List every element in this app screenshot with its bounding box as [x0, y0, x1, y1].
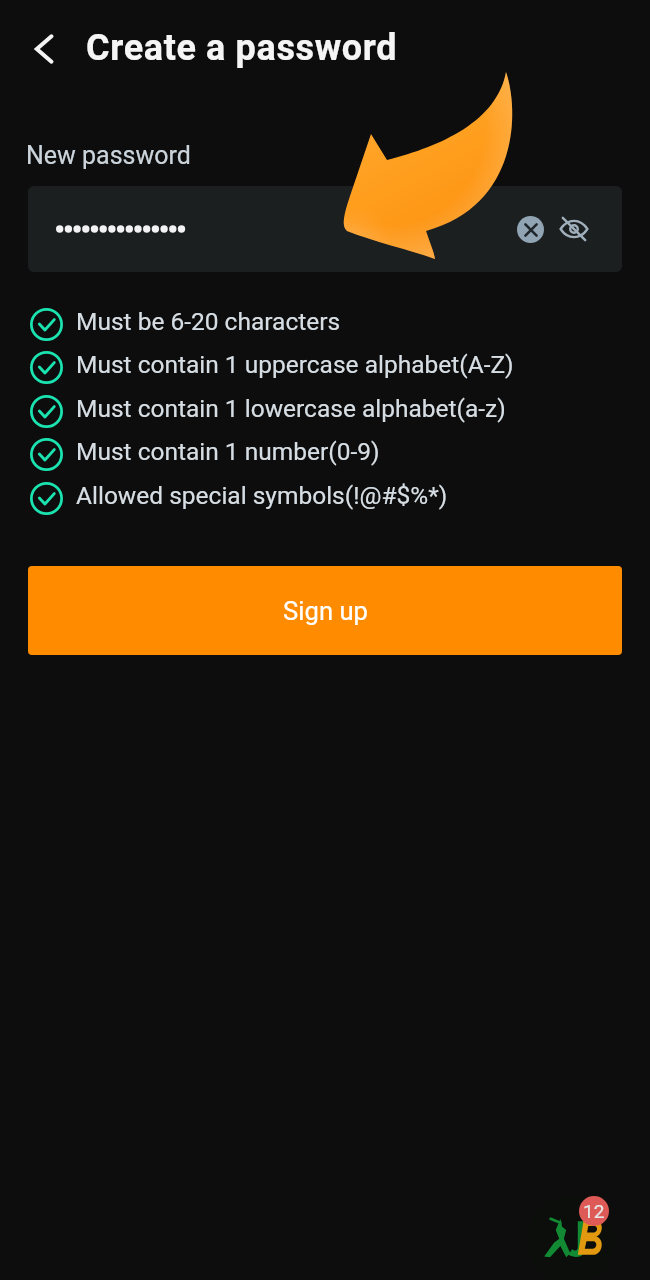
button[interactable]: Must contain 1 uppercase alphabet(A-Z)	[28, 345, 622, 389]
button[interactable]: Must contain 1 number(0-9)	[28, 432, 622, 476]
staticText: Sign up	[283, 596, 368, 626]
staticText: Must contain 1 lowercase alphabet(a-z)	[76, 394, 506, 423]
button[interactable]: Clear text	[28, 186, 622, 272]
staticText: Must contain 1 uppercase alphabet(A-Z)	[76, 350, 514, 379]
staticText: Create a password	[86, 27, 398, 69]
button[interactable]: Allowed special symbols(!@#$%*)	[28, 476, 622, 520]
staticText: New password	[26, 141, 191, 170]
button[interactable]: Clear text	[508, 207, 552, 251]
button[interactable]: Back	[18, 23, 70, 75]
button[interactable]: Must be 6-20 characters	[28, 302, 622, 346]
button[interactable]: Sign up	[28, 566, 622, 655]
button[interactable]: Assistant	[527, 1196, 615, 1280]
staticText: 12	[583, 1200, 605, 1222]
staticText: Must be 6-20 characters	[76, 307, 341, 336]
button[interactable]: Show password	[552, 207, 596, 251]
button[interactable]: Must contain 1 lowercase alphabet(a-z)	[28, 389, 622, 433]
staticText: Must contain 1 number(0-9)	[76, 437, 380, 466]
staticText: Allowed special symbols(!@#$%*)	[76, 481, 448, 510]
